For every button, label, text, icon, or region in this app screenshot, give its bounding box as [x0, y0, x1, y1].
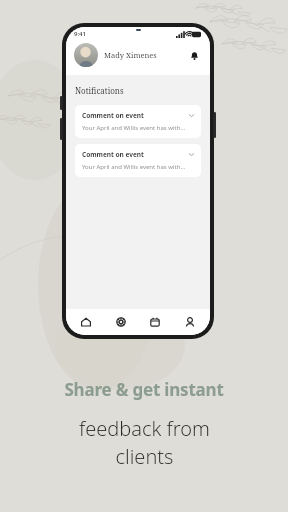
staticText: Comment on event — [82, 150, 144, 159]
staticText: feedback from clients — [79, 415, 210, 470]
staticText: 9:41 — [74, 30, 86, 38]
button[interactable]: Comment on event — [75, 105, 201, 138]
button[interactable]: Explore — [106, 309, 136, 335]
staticText: Your April and Willis event has with... — [82, 124, 186, 132]
button[interactable]: Calendar — [140, 309, 170, 335]
button[interactable]: Notifications — [186, 47, 202, 63]
staticText: Share & get instant — [64, 378, 224, 401]
button[interactable]: Profile — [175, 309, 205, 335]
button[interactable]: Mady Ximenes — [74, 43, 202, 67]
staticText: Mady Ximenes — [104, 50, 157, 60]
button[interactable]: Home — [71, 309, 101, 335]
button[interactable]: Comment on event — [75, 144, 201, 177]
staticText: Comment on event — [82, 111, 144, 120]
staticText: Notifications — [75, 85, 124, 96]
staticText: Your April and Willis event has with... — [82, 163, 186, 171]
